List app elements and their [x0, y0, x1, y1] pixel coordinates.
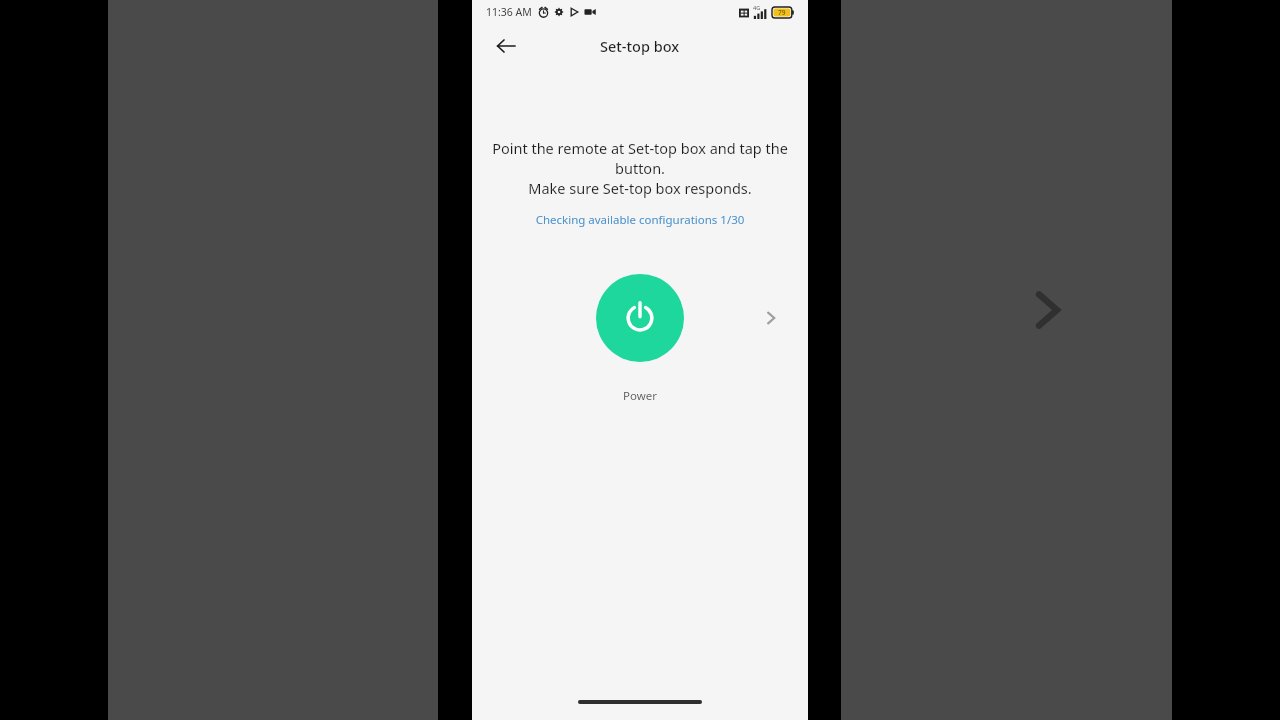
staticText: Checking available configurations 1/30 [472, 212, 808, 228]
button[interactable]: Power [596, 274, 684, 362]
button[interactable]: Back [490, 30, 522, 62]
staticText: 11:36 AM [486, 5, 532, 19]
staticText: 4G [753, 4, 761, 11]
staticText: Power [472, 388, 808, 404]
staticText: Point the remote at Set-top box and tap … [476, 138, 804, 198]
button[interactable]: Next [756, 303, 786, 333]
staticText: Set-top box [600, 36, 680, 56]
staticText: 79 [778, 8, 786, 17]
